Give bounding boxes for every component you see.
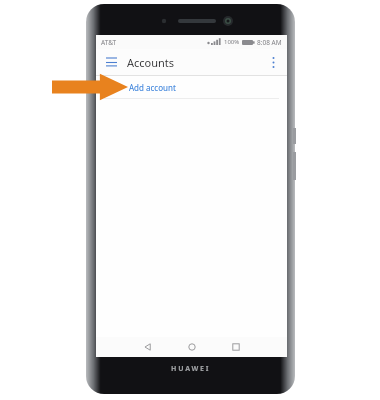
button[interactable]: Add account (96, 76, 287, 98)
button[interactable]: More options (263, 52, 283, 72)
button[interactable]: Home (170, 337, 214, 357)
staticText: 8:08 AM (257, 38, 282, 47)
staticText: Add account (129, 82, 176, 93)
button[interactable]: Back (126, 337, 170, 357)
staticText: HUAWEI (171, 364, 211, 374)
staticText: AT&T (101, 38, 117, 47)
staticText: 100% (224, 38, 240, 46)
button[interactable]: Recent apps (214, 337, 258, 357)
staticText: Accounts (127, 55, 175, 70)
button[interactable]: Open navigation menu (101, 52, 121, 72)
